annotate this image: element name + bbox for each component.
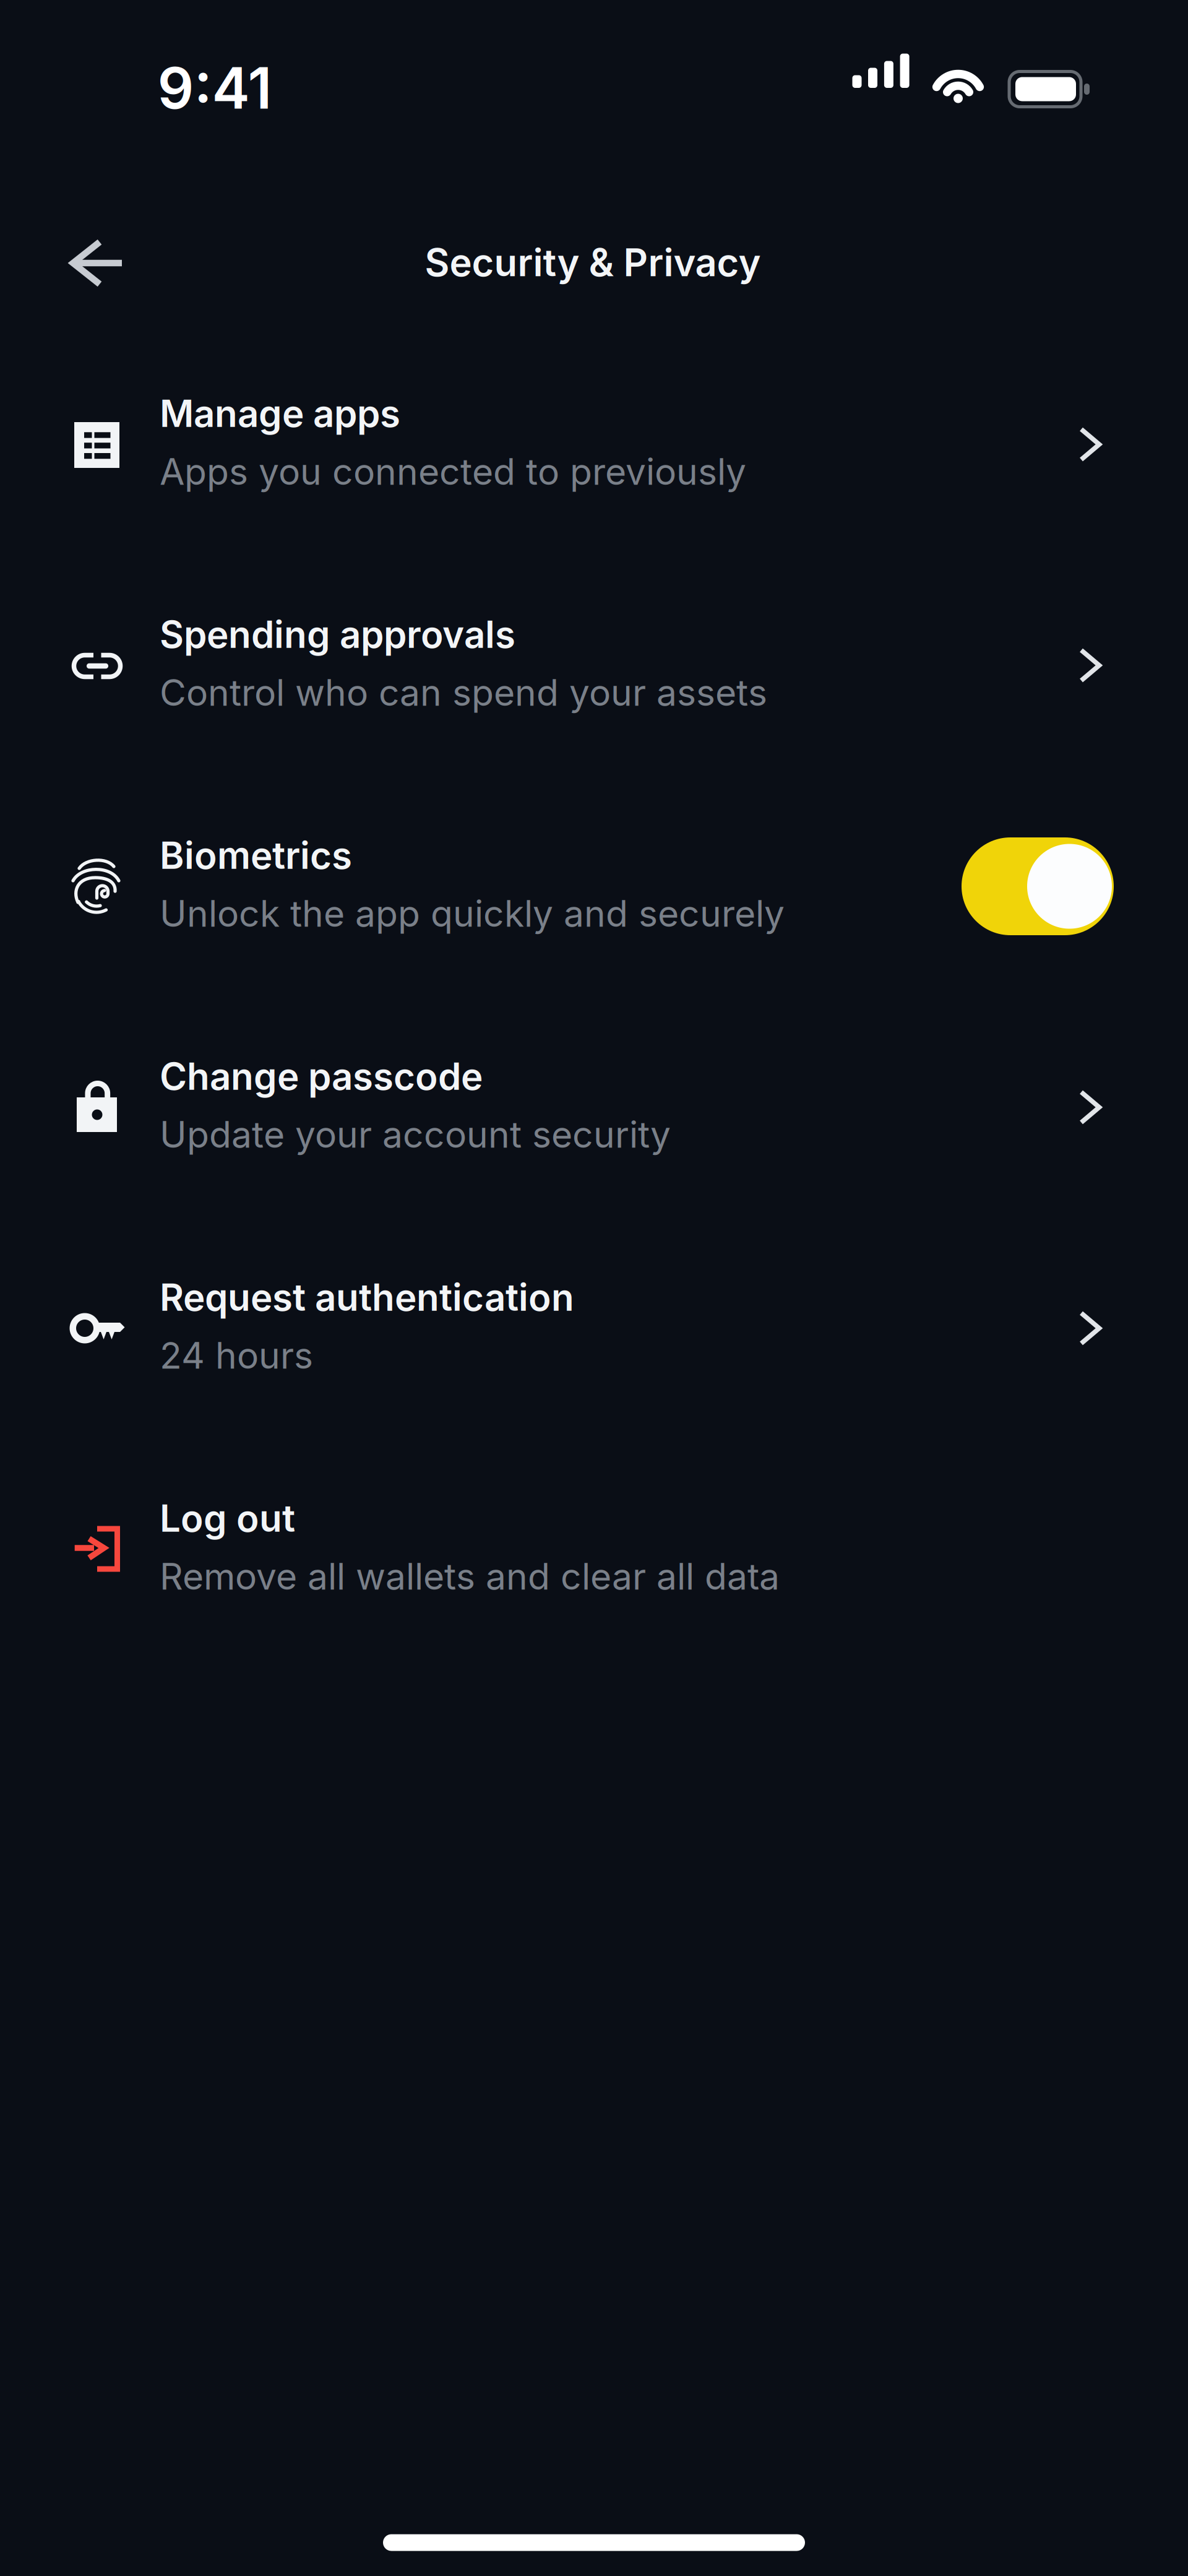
staticText: Remove all wallets and clear all data xyxy=(160,1554,780,1598)
staticText: Request authentication xyxy=(160,1275,574,1320)
button[interactable]: Biometrics xyxy=(962,837,1114,935)
staticText: Unlock the app quickly and securely xyxy=(160,892,785,936)
staticText: Manage apps xyxy=(160,391,400,436)
button[interactable]: Log out xyxy=(0,1456,1188,1641)
staticText: Biometrics xyxy=(160,833,352,878)
staticText: Log out xyxy=(160,1496,295,1541)
staticText: Change passcode xyxy=(160,1054,483,1099)
staticText: 9:41 xyxy=(157,53,272,122)
staticText: Apps you connected to previously xyxy=(160,450,746,494)
staticText: Security & Privacy xyxy=(425,239,761,285)
staticText: 24 hours xyxy=(160,1333,313,1377)
button[interactable]: Manage apps xyxy=(0,351,1188,537)
staticText: Spending approvals xyxy=(160,612,515,657)
button[interactable]: Request authentication xyxy=(0,1235,1188,1420)
button[interactable]: Back xyxy=(60,226,134,300)
button[interactable]: Change passcode xyxy=(0,1014,1188,1199)
staticText: Update your account security xyxy=(160,1113,671,1156)
staticText: Control who can spend your assets xyxy=(160,671,767,715)
button[interactable]: Spending approvals xyxy=(0,572,1188,758)
